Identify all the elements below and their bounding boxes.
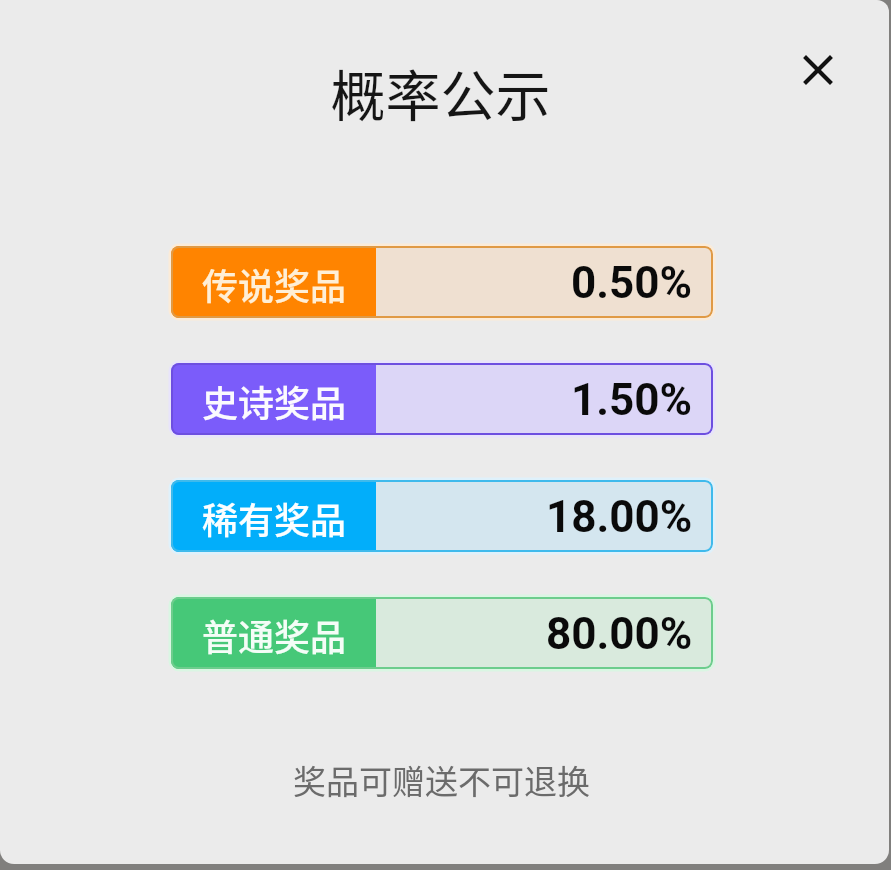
button[interactable]: 史诗奖品 [171, 363, 713, 435]
staticText: 传说奖品 [202, 258, 347, 310]
button[interactable]: 普通奖品 [171, 597, 713, 669]
staticText: 18.00% [546, 491, 693, 543]
staticText: 0.50% [571, 257, 693, 309]
staticText: 稀有奖品 [202, 492, 347, 544]
staticText: 概率公示 [0, 52, 885, 132]
button[interactable]: 稀有奖品 [171, 480, 713, 552]
staticText: 奖品可赠送不可退换 [0, 756, 886, 804]
staticText: 史诗奖品 [202, 375, 347, 427]
button[interactable]: Close [787, 39, 849, 101]
button[interactable]: 传说奖品 [171, 246, 713, 318]
staticText: 1.50% [571, 374, 693, 426]
staticText: 普通奖品 [202, 609, 347, 661]
staticText: 80.00% [546, 608, 693, 660]
